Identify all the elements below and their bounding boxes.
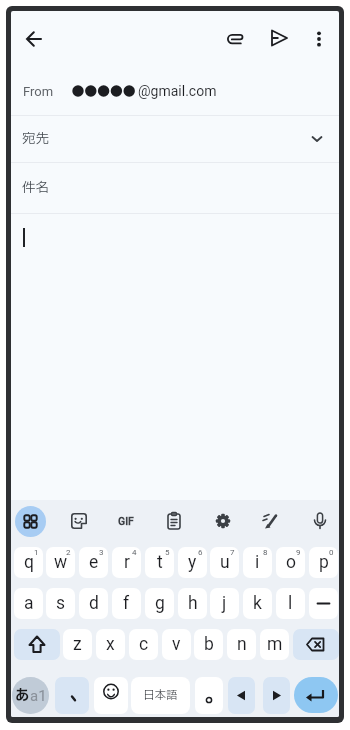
button[interactable]: 宛先 [11, 115, 339, 163]
staticText: h [188, 593, 198, 614]
staticText: 件名 [22, 178, 49, 198]
staticText: From [23, 84, 54, 99]
button[interactable] [263, 677, 290, 714]
staticText: 日本語 [143, 687, 178, 704]
button[interactable] [55, 677, 89, 714]
staticText: あ [15, 685, 30, 707]
button[interactable]: l [276, 588, 305, 619]
staticText: e [89, 552, 99, 573]
button[interactable] [158, 505, 190, 537]
button[interactable]: p [309, 547, 338, 578]
staticText: 宛先 [22, 129, 49, 149]
staticText: z [73, 634, 82, 655]
button[interactable] [14, 629, 60, 660]
staticText: w [54, 552, 68, 573]
button[interactable] [304, 505, 336, 537]
button[interactable]: m [260, 629, 289, 660]
button[interactable]: From [11, 67, 339, 115]
button[interactable] [294, 677, 338, 713]
button[interactable]: b [194, 629, 223, 660]
button[interactable] [309, 588, 338, 619]
button[interactable] [195, 677, 223, 714]
staticText: c [139, 634, 149, 655]
button[interactable]: GIF [107, 505, 145, 537]
staticText: s [56, 593, 66, 614]
button[interactable] [261, 21, 297, 57]
button[interactable]: t [145, 547, 174, 578]
button[interactable] [228, 677, 255, 714]
staticText: o [286, 552, 296, 573]
button[interactable] [14, 19, 54, 59]
staticText: i [255, 552, 260, 573]
button[interactable]: r [112, 547, 141, 578]
button[interactable] [254, 505, 286, 537]
button[interactable]: g [145, 588, 174, 619]
staticText: g [155, 593, 165, 614]
staticText: 9 [296, 548, 301, 557]
button[interactable]: e [79, 547, 108, 578]
staticText: v [172, 634, 181, 655]
staticText: q [24, 552, 34, 573]
button[interactable] [15, 506, 46, 537]
button[interactable] [301, 21, 337, 57]
staticText: m [267, 634, 283, 655]
staticText: 3 [99, 548, 104, 557]
button[interactable]: i [243, 547, 272, 578]
button[interactable]: q [14, 547, 43, 578]
button[interactable]: k [243, 588, 272, 619]
staticText: p [319, 552, 329, 573]
button[interactable]: s [46, 588, 75, 619]
staticText: n [237, 634, 247, 655]
staticText: GIF [118, 515, 134, 527]
button[interactable]: d [79, 588, 108, 619]
staticText: 6 [198, 548, 203, 557]
button[interactable]: v [162, 629, 191, 660]
button[interactable] [293, 629, 339, 660]
staticText: a [24, 593, 34, 614]
staticText: r [124, 552, 130, 573]
staticText: y [188, 552, 197, 573]
button[interactable]: j [210, 588, 239, 619]
staticText: j [222, 593, 227, 614]
button[interactable]: x [96, 629, 125, 660]
staticText: 0 [329, 548, 334, 557]
staticText: f [123, 593, 130, 614]
button[interactable]: u [210, 547, 239, 578]
button[interactable]: w [46, 547, 75, 578]
button[interactable]: o [276, 547, 305, 578]
staticText: d [89, 593, 99, 614]
button[interactable] [11, 213, 339, 500]
button[interactable]: c [129, 629, 158, 660]
button[interactable] [207, 505, 239, 537]
button[interactable]: 日本語 [131, 677, 190, 714]
staticText: a1 [30, 687, 47, 705]
staticText: 2 [66, 548, 71, 557]
button[interactable]: f [112, 588, 141, 619]
button[interactable] [218, 21, 254, 57]
staticText: 7 [230, 548, 235, 557]
staticText: x [106, 634, 115, 655]
staticText: b [204, 634, 214, 655]
button[interactable]: y [178, 547, 207, 578]
button[interactable]: あ [12, 677, 49, 714]
button[interactable]: n [227, 629, 256, 660]
button[interactable]: z [63, 629, 92, 660]
staticText: k [253, 593, 262, 614]
staticText: l [288, 593, 293, 614]
button[interactable]: h [178, 588, 207, 619]
button[interactable] [94, 677, 128, 714]
staticText: 1 [34, 548, 39, 557]
button[interactable]: a [14, 588, 43, 619]
button[interactable] [63, 505, 95, 537]
staticText: t [157, 552, 163, 573]
staticText: @gmail.com [138, 83, 217, 99]
staticText: 4 [132, 548, 137, 557]
staticText: 5 [165, 548, 170, 557]
button[interactable]: 件名 [11, 162, 339, 213]
staticText: u [220, 552, 230, 573]
staticText: 8 [263, 548, 268, 557]
